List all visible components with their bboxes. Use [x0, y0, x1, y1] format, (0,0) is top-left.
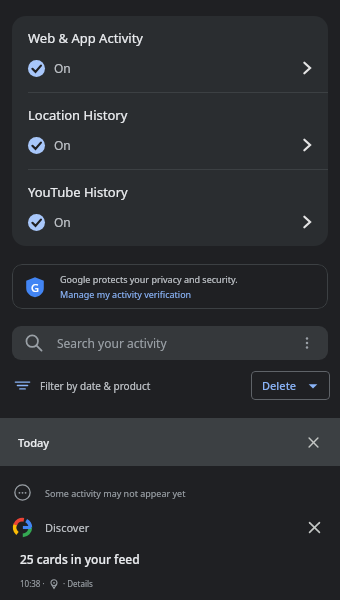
staticText: Discover: [45, 520, 90, 535]
staticText: Today: [18, 435, 50, 450]
button[interactable]: Web & App Activity: [12, 16, 328, 92]
staticText: Web & App Activity: [28, 29, 143, 47]
staticText: Search your activity: [57, 335, 167, 351]
staticText: Manage my activity verification: [60, 288, 192, 300]
staticText: Filter by date & product: [40, 379, 151, 393]
staticText: On: [54, 60, 71, 76]
button[interactable]: G: [12, 264, 328, 309]
staticText: On: [54, 214, 71, 230]
button[interactable]: More options: [299, 335, 315, 351]
button[interactable]: Filter by date & product: [14, 377, 151, 394]
staticText: Delete: [262, 378, 297, 393]
button[interactable]: Remove Discover activity: [305, 518, 324, 537]
button[interactable]: Search your activity: [12, 326, 328, 360]
staticText: Some activity may not appear yet: [45, 487, 186, 499]
staticText: YouTube History: [28, 183, 128, 201]
button[interactable]: Location History: [12, 93, 328, 169]
staticText: On: [54, 137, 71, 153]
staticText: Location History: [28, 106, 128, 124]
button[interactable]: YouTube History: [12, 170, 328, 246]
staticText: G: [31, 280, 39, 295]
staticText: Google protects your privacy and securit…: [60, 273, 238, 285]
staticText: 25 cards in your feed: [20, 551, 140, 567]
staticText: 10:38 ·: [20, 578, 45, 589]
button[interactable]: Delete: [251, 371, 330, 400]
button[interactable]: · Details: [63, 578, 93, 589]
button[interactable]: Dismiss Today: [305, 434, 322, 451]
